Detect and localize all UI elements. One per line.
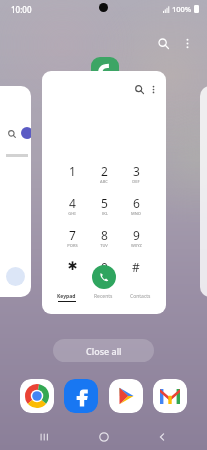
staticText: Contacts [130,293,151,300]
staticText: 9 [133,227,140,243]
button[interactable]: 9 [120,227,152,247]
staticText: ✱ [67,259,78,273]
button[interactable]: ✱ [56,259,88,279]
button[interactable]: # [120,259,152,279]
button[interactable]: Chrome [20,379,54,413]
button[interactable]: 4 [56,195,88,215]
button[interactable]: Recent apps [32,424,58,450]
staticText: GHI [68,211,76,215]
staticText: ABC [100,179,108,183]
staticText: MNO [131,211,141,215]
button[interactable]: Search contacts [42,71,166,314]
staticText: JKL [102,211,108,215]
staticText: 100% [172,4,192,14]
staticText: 8 [101,227,108,243]
button[interactable]: Home [91,424,117,450]
button[interactable]: 8 [88,227,120,247]
staticText: 1 [69,163,76,179]
button[interactable]: Back [149,424,175,450]
button[interactable]: Search [153,33,173,53]
staticText: WXYZ [131,243,142,247]
button[interactable]: Call [92,265,116,289]
button[interactable]: 6 [120,195,152,215]
button[interactable] [0,86,31,297]
staticText: Keypad [57,293,76,300]
button[interactable]: 3 [120,163,152,183]
staticText: 2 [101,163,108,179]
other: More options [149,85,158,94]
staticText: PQRS [67,243,78,247]
button[interactable]: Recents [92,291,115,302]
staticText: 3 [133,163,140,179]
staticText: 0 [101,259,108,275]
button[interactable]: 2 [88,163,120,183]
staticText: DEF [132,179,140,183]
staticText: # [132,259,140,275]
staticText: 5 [101,195,108,211]
button[interactable]: 1 [56,163,88,183]
button[interactable]: Keypad [55,291,78,304]
button[interactable]: Contacts [128,291,153,302]
button[interactable]: Facebook [64,379,98,413]
button[interactable]: 7 [56,227,88,247]
staticText: + [103,275,106,279]
button[interactable]: Close all [53,339,154,362]
button[interactable] [200,86,207,297]
button[interactable]: 5 [88,195,120,215]
button[interactable]: Play Store [109,379,143,413]
button[interactable]: Phone app [91,57,119,85]
staticText: Close all [86,345,122,357]
other: Search contacts [135,85,144,94]
staticText: 4 [69,195,76,211]
button[interactable]: More options [177,33,197,53]
button[interactable]: 0 [88,259,120,279]
staticText: Recents [94,293,113,300]
staticText: TUV [100,243,108,247]
staticText: 7 [69,227,76,243]
button[interactable]: Gmail [153,379,187,413]
staticText: 10:00 [11,4,32,15]
staticText: 6 [133,195,140,211]
